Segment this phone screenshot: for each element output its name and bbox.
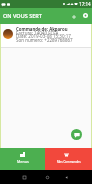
button[interactable]: Menus: [0, 148, 45, 170]
button[interactable]: Chat: [71, 129, 82, 140]
staticText: Facture: 14040 FCFA: [16, 30, 59, 36]
staticText: 17:14: [79, 1, 91, 7]
staticText: ON VOUS SERT: [3, 12, 42, 19]
button[interactable]: Commande de: Akparou: [1, 24, 91, 47]
button[interactable]: Refresh: [80, 10, 91, 21]
staticText: Menus: [17, 159, 29, 164]
button[interactable]: Mes Commandes: [45, 148, 92, 170]
staticText: Mes Commandes: [57, 160, 81, 164]
button[interactable]: Add order: [68, 11, 79, 22]
staticText: Date: 2019-03-08 15:30:17: [16, 33, 73, 39]
button[interactable]: Recents: [21, 174, 28, 181]
button[interactable]: Home: [44, 174, 51, 181]
staticText: Son numero: +2289768867: [16, 37, 73, 43]
button[interactable]: Back: [63, 174, 70, 181]
staticText: Commande de: Akparou: [16, 26, 68, 32]
